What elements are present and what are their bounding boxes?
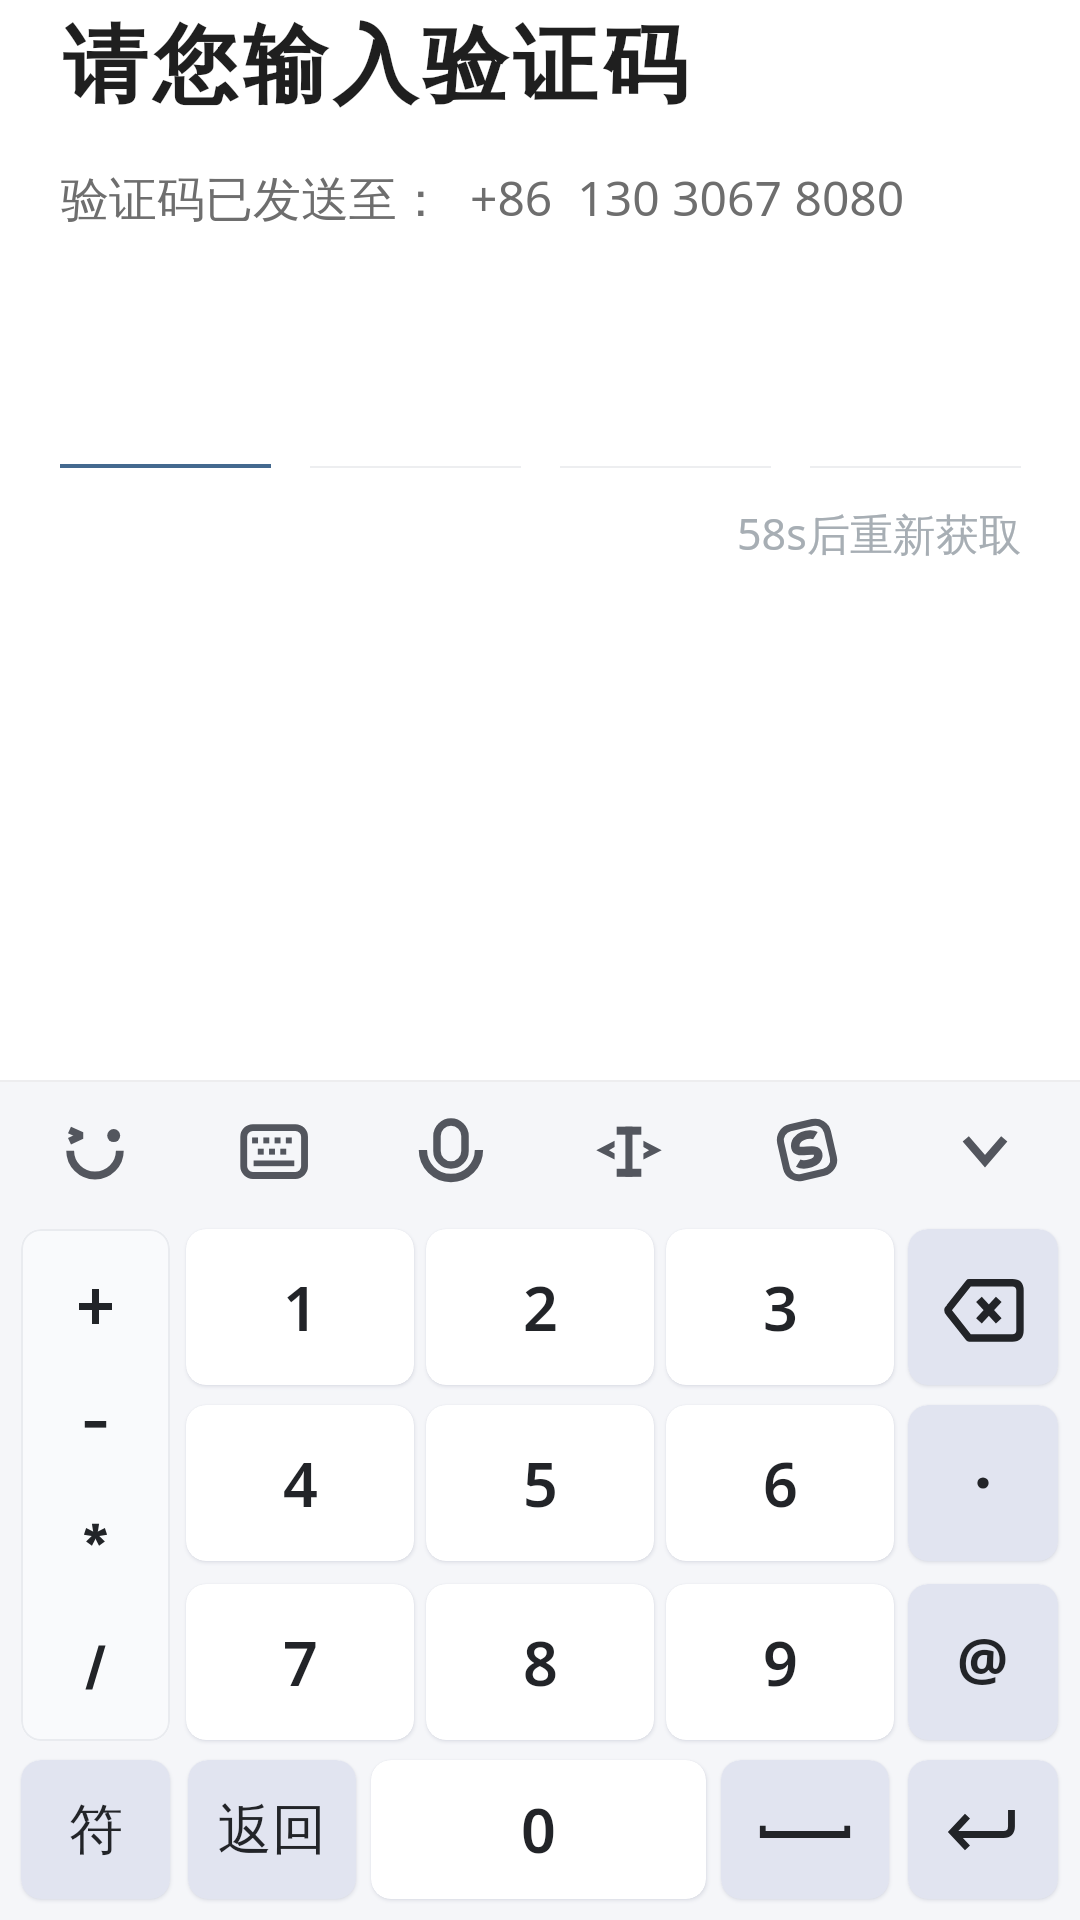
staticText: 验证码已发送至： +86 130 3067 8080: [61, 165, 905, 231]
staticText: 7: [283, 1621, 318, 1704]
button[interactable]: 1: [186, 1229, 414, 1385]
button[interactable]: Emoji: [6, 1080, 184, 1220]
button[interactable]: Enter: [908, 1760, 1058, 1899]
button[interactable]: Operators plus minus multiply divide: [21, 1229, 170, 1741]
staticText: 返回: [218, 1796, 326, 1864]
button[interactable]: Space: [721, 1760, 889, 1899]
staticText: 4: [283, 1442, 318, 1525]
staticText: 0: [521, 1788, 556, 1871]
button[interactable]: 4: [186, 1405, 414, 1561]
button[interactable]: 5: [426, 1405, 654, 1561]
button[interactable]: Move cursor: [540, 1080, 718, 1220]
button[interactable]: Decimal point: [908, 1405, 1058, 1561]
staticText: 请您输入验证码: [60, 13, 690, 119]
button[interactable]: Backspace: [908, 1229, 1058, 1385]
button[interactable]: Keyboard layout: [184, 1080, 362, 1220]
button[interactable]: 2: [426, 1229, 654, 1385]
button[interactable]: 9: [666, 1584, 894, 1740]
button[interactable]: 58s后重新获取: [737, 504, 1022, 563]
button[interactable]: @: [908, 1584, 1058, 1740]
button[interactable]: 0: [371, 1760, 706, 1899]
button[interactable]: Hide keyboard: [896, 1080, 1074, 1220]
staticText: 1: [283, 1266, 318, 1349]
button[interactable]: Sogou input: [718, 1080, 896, 1220]
button[interactable]: Verification code input: [60, 380, 1022, 468]
staticText: 9: [763, 1621, 798, 1704]
button[interactable]: 返回: [188, 1760, 356, 1899]
button[interactable]: 7: [186, 1584, 414, 1740]
staticText: @: [957, 1619, 1009, 1697]
staticText: 6: [763, 1442, 798, 1525]
button[interactable]: 6: [666, 1405, 894, 1561]
staticText: 8: [523, 1621, 558, 1704]
staticText: 5: [523, 1442, 558, 1525]
staticText: 2: [523, 1266, 558, 1349]
button[interactable]: 3: [666, 1229, 894, 1385]
button[interactable]: 8: [426, 1584, 654, 1740]
button[interactable]: Voice input: [362, 1080, 540, 1220]
staticText: 3: [763, 1266, 798, 1349]
staticText: 符: [69, 1796, 123, 1864]
button[interactable]: 符: [21, 1760, 170, 1899]
